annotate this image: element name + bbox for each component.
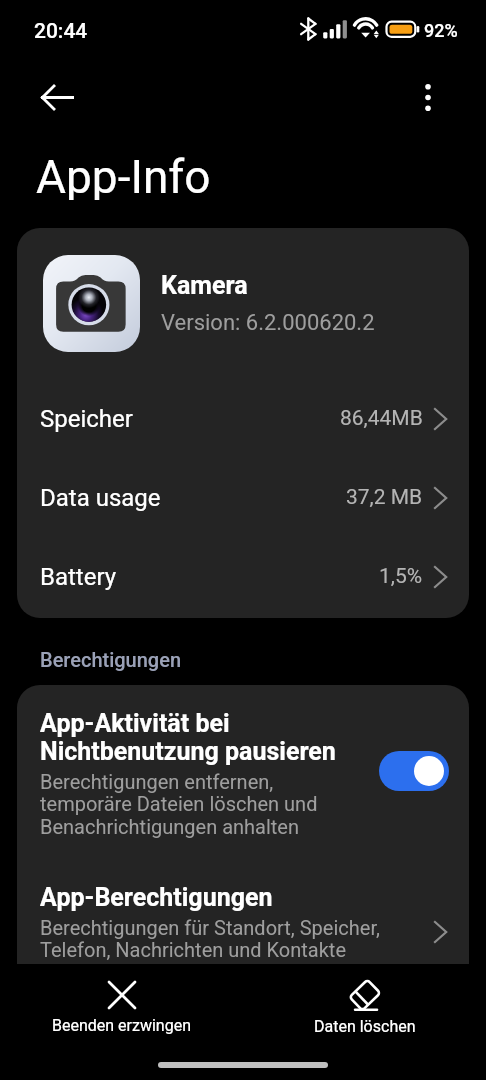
button[interactable]: Beenden erzwingen: [0, 964, 243, 1050]
staticText: 37,2 MB: [346, 485, 423, 510]
button[interactable]: Battery: [17, 537, 469, 616]
staticText: 20:44: [34, 19, 88, 44]
button[interactable]: Daten löschen: [243, 964, 486, 1050]
staticText: 92%: [424, 20, 458, 41]
staticText: Berechtigungen: [40, 648, 182, 671]
button[interactable]: Speicher: [17, 379, 469, 458]
staticText: Kamera: [161, 271, 248, 300]
staticText: Beenden erzwingen: [52, 1016, 191, 1035]
staticText: Berechtigungen entfernen, temporäre Date…: [40, 770, 318, 839]
staticText: Battery: [40, 563, 117, 591]
button[interactable]: App-Berechtigungen: [17, 839, 469, 992]
button[interactable]: App-Aktivität bei Nichtbenutzung pausier…: [17, 685, 469, 839]
staticText: Berechtigungen für Standort, Speicher, T…: [40, 916, 380, 962]
staticText: App-Info: [36, 150, 211, 200]
button[interactable]: [379, 751, 449, 791]
staticText: App-Berechtigungen: [40, 883, 273, 912]
button[interactable]: Back: [26, 66, 88, 128]
staticText: Data usage: [40, 484, 161, 512]
staticText: App-Aktivität bei Nichtbenutzung pausier…: [40, 709, 336, 766]
staticText: Daten löschen: [314, 1017, 416, 1036]
button[interactable]: Data usage: [17, 458, 469, 537]
button[interactable]: More options: [408, 77, 448, 117]
staticText: Speicher: [40, 405, 133, 433]
staticText: 1,5%: [379, 564, 423, 589]
staticText: Version: 6.2.000620.2: [161, 310, 375, 336]
staticText: 86,44MB: [340, 406, 423, 431]
